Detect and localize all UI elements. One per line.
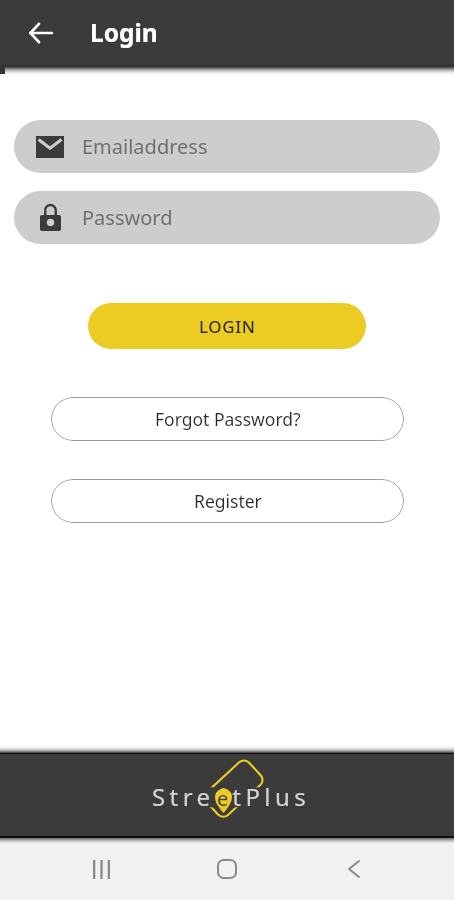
staticText: e: [217, 785, 229, 812]
button[interactable]: Back: [8, 0, 73, 65]
staticText: Emailaddress: [82, 133, 208, 160]
staticText: Login: [90, 16, 158, 49]
staticText: Password: [82, 204, 173, 231]
button[interactable]: Recent apps: [77, 845, 125, 893]
staticText: LOGIN: [199, 315, 256, 338]
button[interactable]: Home: [203, 845, 251, 893]
button[interactable]: Register: [51, 479, 404, 523]
button[interactable]: LOGIN: [88, 303, 366, 349]
button[interactable]: Back: [330, 845, 378, 893]
staticText: Register: [194, 489, 262, 513]
button[interactable]: Emailaddress: [14, 120, 440, 173]
staticText: StreetPlus: [152, 780, 311, 813]
button[interactable]: Password: [14, 191, 440, 244]
button[interactable]: Forgot Password?: [51, 397, 404, 441]
staticText: Forgot Password?: [155, 407, 301, 431]
